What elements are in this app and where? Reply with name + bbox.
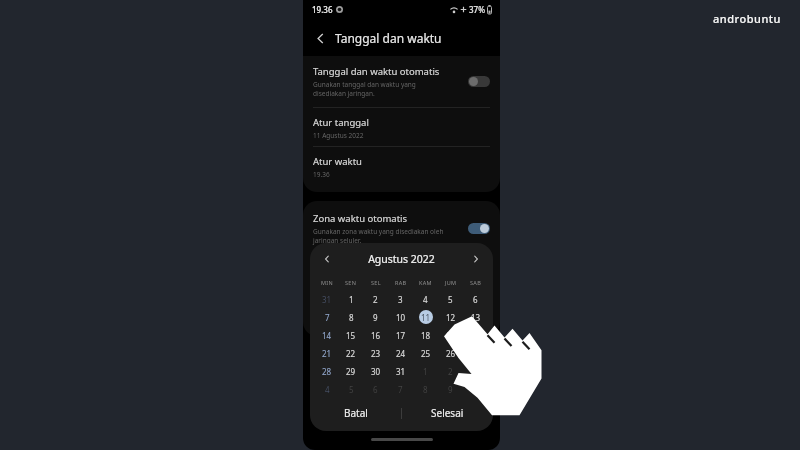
staticText: 19.36: [312, 4, 333, 15]
button[interactable]: Next month: [467, 250, 485, 268]
button[interactable]: 7: [315, 308, 339, 326]
button[interactable]: 7: [388, 380, 413, 398]
button[interactable]: Tanggal dan waktu otomatis: [303, 56, 500, 107]
staticText: 10: [396, 312, 406, 323]
button[interactable]: Atur tanggal: [303, 108, 500, 146]
staticText: 8: [349, 312, 354, 323]
button[interactable]: 2: [363, 290, 388, 308]
staticText: 24: [396, 348, 406, 359]
button[interactable]: 17: [388, 326, 413, 344]
button[interactable]: 5: [339, 380, 363, 398]
staticText: 17: [396, 330, 406, 341]
staticText: 19: [446, 330, 456, 341]
staticText: 26: [446, 348, 456, 359]
staticText: KAM: [419, 279, 432, 286]
staticText: 1: [349, 294, 354, 305]
button[interactable]: 24: [388, 344, 413, 362]
staticText: SEL: [371, 279, 381, 286]
button[interactable]: 26: [438, 344, 463, 362]
staticText: 11: [421, 312, 431, 323]
button[interactable]: 1: [413, 362, 438, 380]
button[interactable]: 19: [438, 326, 463, 344]
button[interactable]: Zona waktu otomatis: [303, 201, 500, 256]
button[interactable]: 3: [388, 290, 413, 308]
button[interactable]: 10: [463, 380, 488, 398]
button[interactable]: 13: [463, 308, 488, 326]
button[interactable]: 8: [413, 380, 438, 398]
staticText: 16: [371, 330, 381, 341]
staticText: 5: [448, 294, 453, 305]
staticText: 4: [325, 384, 330, 395]
button[interactable]: 31: [315, 290, 339, 308]
button[interactable]: 25: [413, 344, 438, 362]
staticText: 14: [322, 330, 332, 341]
staticText: androbuntu: [713, 11, 781, 26]
staticText: 3: [398, 294, 403, 305]
staticText: 7: [398, 384, 403, 395]
button[interactable]: Atur waktu: [303, 147, 500, 185]
staticText: 6: [473, 294, 478, 305]
button[interactable]: 9: [438, 380, 463, 398]
staticText: 6: [373, 384, 378, 395]
staticText: 5: [349, 384, 354, 395]
staticText: 30: [371, 366, 381, 377]
button[interactable]: 6: [363, 380, 388, 398]
button[interactable]: 5: [438, 290, 463, 308]
staticText: 8: [423, 384, 428, 395]
staticText: 7: [325, 312, 330, 323]
button[interactable]: 16: [363, 326, 388, 344]
staticText: Tanggal dan waktu: [335, 30, 442, 46]
staticText: Tanggal dan waktu otomatis: [313, 65, 440, 78]
button[interactable]: 23: [363, 344, 388, 362]
button[interactable]: 28: [315, 362, 339, 380]
staticText: RAB: [395, 279, 407, 286]
button[interactable]: 10: [388, 308, 413, 326]
button[interactable]: 12: [438, 308, 463, 326]
button[interactable]: 22: [339, 344, 363, 362]
staticText: 12: [446, 312, 456, 323]
button[interactable]: 31: [388, 362, 413, 380]
button[interactable]: 29: [339, 362, 363, 380]
button[interactable]: Back: [310, 28, 330, 48]
button[interactable]: 2: [438, 362, 463, 380]
staticText: 15: [346, 330, 356, 341]
button[interactable]: 4: [315, 380, 339, 398]
button[interactable]: Previous month: [318, 250, 336, 268]
staticText: Gunakan zona waktu yang disediakan oleh …: [313, 227, 444, 245]
staticText: 4: [423, 294, 428, 305]
button[interactable]: 4: [413, 290, 438, 308]
button[interactable]: 20: [463, 326, 488, 344]
button[interactable]: 9: [363, 308, 388, 326]
staticText: 37%: [469, 4, 485, 15]
button[interactable]: 18: [413, 326, 438, 344]
button[interactable]: 14: [315, 326, 339, 344]
button[interactable]: 1: [339, 290, 363, 308]
staticText: 11 Agustus 2022: [313, 131, 364, 140]
button[interactable]: 30: [363, 362, 388, 380]
staticText: Gunakan tanggal dan waktu yang disediaka…: [313, 80, 416, 98]
staticText: 2: [373, 294, 378, 305]
button[interactable]: Selesai: [402, 398, 493, 428]
button[interactable]: 15: [339, 326, 363, 344]
staticText: 10: [471, 384, 481, 395]
button[interactable]: 6: [463, 290, 488, 308]
staticText: 18: [421, 330, 431, 341]
staticText: Selesai: [431, 406, 464, 420]
staticText: 2: [448, 366, 453, 377]
staticText: SEN: [345, 279, 357, 286]
staticText: JUM: [445, 279, 457, 286]
staticText: 21: [322, 348, 332, 359]
button[interactable]: 11: [413, 308, 438, 326]
staticText: Atur tanggal: [313, 116, 369, 129]
staticText: 9: [448, 384, 453, 395]
button[interactable]: Batal: [310, 398, 401, 428]
button[interactable]: 3: [463, 362, 488, 380]
staticText: 19.36: [313, 170, 330, 179]
button[interactable]: Switch on: [468, 223, 490, 234]
button[interactable]: 8: [339, 308, 363, 326]
button[interactable]: 21: [315, 344, 339, 362]
button[interactable]: Switch off: [468, 76, 490, 87]
staticText: 31: [396, 366, 406, 377]
